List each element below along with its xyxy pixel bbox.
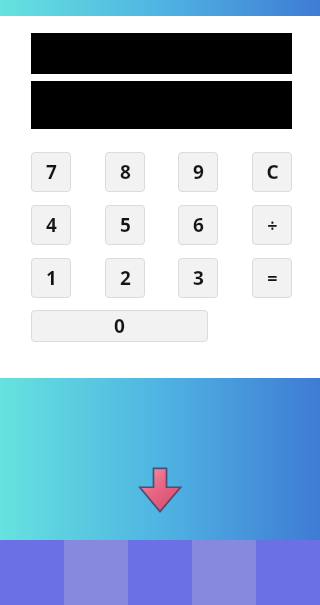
staticText: 2 <box>120 265 131 291</box>
button[interactable]: 1 <box>31 258 71 298</box>
button[interactable]: 2 <box>105 258 145 298</box>
button[interactable]: 5 <box>105 205 145 245</box>
button[interactable]: 6 <box>178 205 218 245</box>
staticText: 0 <box>114 313 125 339</box>
staticText: = <box>267 266 278 291</box>
staticText: ÷ <box>267 213 278 238</box>
button[interactable]: 3 <box>178 258 218 298</box>
staticText: 1 <box>46 265 57 291</box>
staticText: 9 <box>193 159 204 185</box>
staticText: 6 <box>193 212 204 238</box>
button[interactable]: 9 <box>178 152 218 192</box>
button[interactable]: 0 <box>31 310 208 342</box>
button[interactable]: 4 <box>31 205 71 245</box>
button[interactable]: C <box>252 152 292 192</box>
button[interactable]: 8 <box>105 152 145 192</box>
button[interactable]: ÷ <box>252 205 292 245</box>
staticText: 3 <box>193 265 204 291</box>
button[interactable]: 7 <box>31 152 71 192</box>
staticText: 7 <box>46 159 57 185</box>
staticText: 8 <box>120 159 131 185</box>
staticText: C <box>266 159 279 185</box>
staticText: 5 <box>120 212 131 238</box>
button[interactable]: = <box>252 258 292 298</box>
staticText: 4 <box>46 212 57 238</box>
button[interactable]: Scroll down <box>139 467 181 513</box>
